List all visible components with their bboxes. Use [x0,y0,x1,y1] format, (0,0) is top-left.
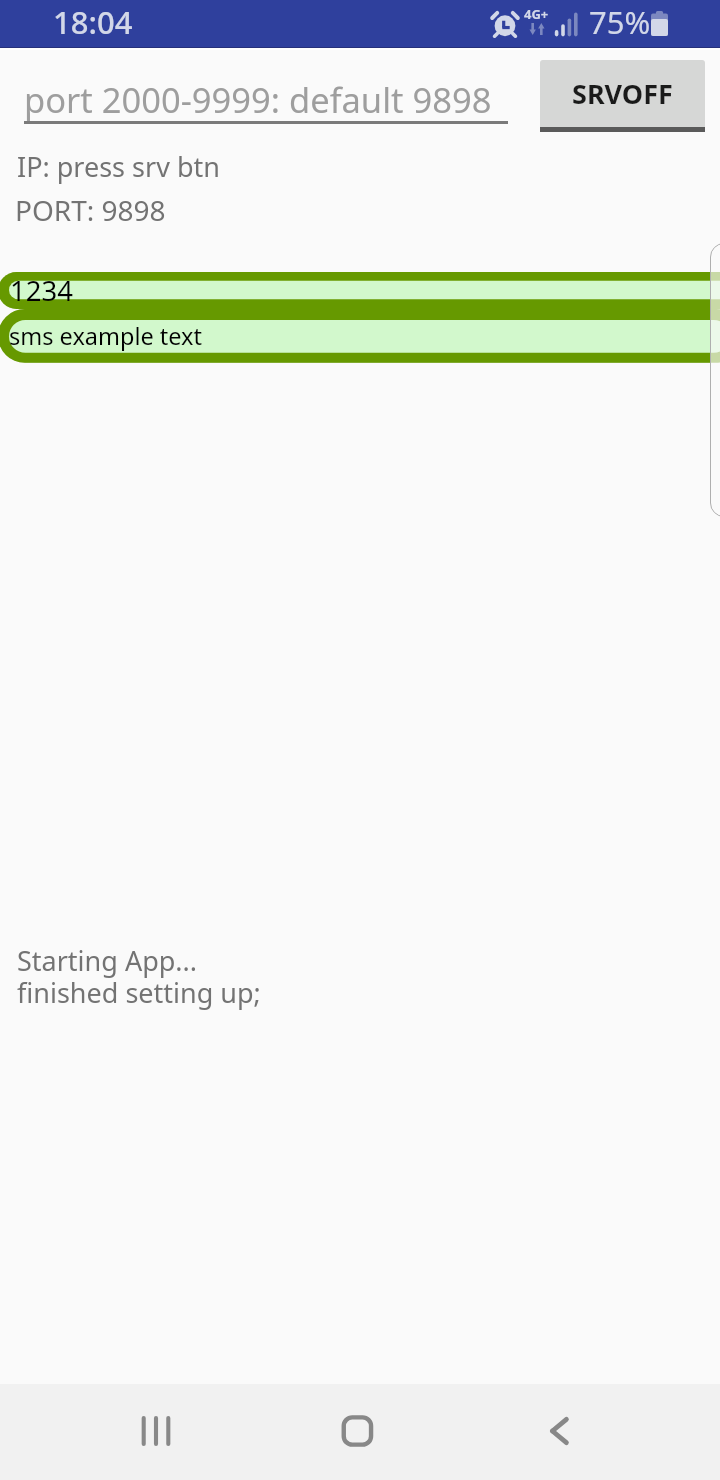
staticText: PORT: 9898 [15,191,166,229]
staticText: port 2000-9999: default 9898 [24,76,492,123]
staticText: 1234 [10,272,73,309]
staticText: Starting App... finished setting up; [17,942,261,1011]
staticText: SRVOFF [572,75,673,112]
button[interactable]: sms example text [0,309,718,363]
staticText: 18:04 [53,1,133,43]
button[interactable]: 1234 [0,272,718,309]
button[interactable]: Home [307,1391,407,1471]
staticText: sms example text [9,320,203,352]
staticText: 4G+ [524,5,549,23]
staticText: sms example text [9,320,203,352]
button[interactable]: SRVOFF [540,60,705,132]
button[interactable]: Recent apps [106,1391,206,1471]
staticText: IP: press srv btn [17,148,220,185]
button[interactable]: 1234 [0,272,718,309]
staticText: 1234 [10,272,73,309]
button[interactable]: Back [508,1391,608,1471]
button[interactable]: sms example text [0,309,718,363]
staticText: 75% [589,1,651,43]
